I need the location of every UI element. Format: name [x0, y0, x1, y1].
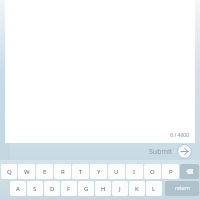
button[interactable]: W: [18, 164, 35, 179]
button[interactable]: return: [165, 181, 199, 196]
button[interactable]: E: [36, 164, 53, 179]
staticText: K: [135, 185, 139, 193]
button[interactable]: K: [129, 181, 145, 196]
staticText: W: [24, 168, 30, 176]
button[interactable]: P: [162, 164, 179, 179]
staticText: Y: [97, 168, 101, 176]
button[interactable]: I: [126, 164, 143, 179]
staticText: J: [119, 185, 121, 193]
staticText: O: [150, 168, 155, 176]
button[interactable]: Y: [90, 164, 107, 179]
staticText: G: [84, 185, 89, 193]
button[interactable]: A: [10, 181, 26, 196]
button[interactable]: G: [78, 181, 94, 196]
button[interactable]: F: [61, 181, 77, 196]
staticText: E: [43, 168, 47, 176]
staticText: L: [152, 185, 156, 193]
staticText: R: [61, 168, 65, 176]
other: Submit: [177, 144, 192, 159]
staticText: return: [175, 185, 190, 192]
button[interactable]: Q: [1, 164, 17, 179]
staticText: F: [67, 185, 71, 193]
staticText: S: [33, 185, 37, 193]
staticText: 0 / 4000: [170, 132, 189, 139]
button[interactable]: S: [27, 181, 43, 196]
button[interactable]: T: [72, 164, 89, 179]
staticText: Q: [7, 168, 12, 176]
staticText: H: [101, 185, 106, 193]
staticText: A: [16, 185, 20, 193]
button[interactable]: O: [144, 164, 161, 179]
staticText: I: [133, 168, 136, 176]
staticText: P: [169, 168, 173, 176]
staticText: D: [50, 185, 55, 193]
button[interactable]: Submit: [147, 144, 194, 159]
staticText: U: [114, 168, 119, 176]
button[interactable]: D: [44, 181, 60, 196]
button[interactable]: L: [146, 181, 162, 196]
button[interactable]: Backspace: [180, 164, 199, 179]
button[interactable]: U: [108, 164, 125, 179]
button[interactable]: H: [95, 181, 111, 196]
button[interactable]: R: [54, 164, 71, 179]
button[interactable]: J: [112, 181, 128, 196]
staticText: T: [79, 168, 83, 176]
staticText: Submit: [149, 147, 173, 157]
